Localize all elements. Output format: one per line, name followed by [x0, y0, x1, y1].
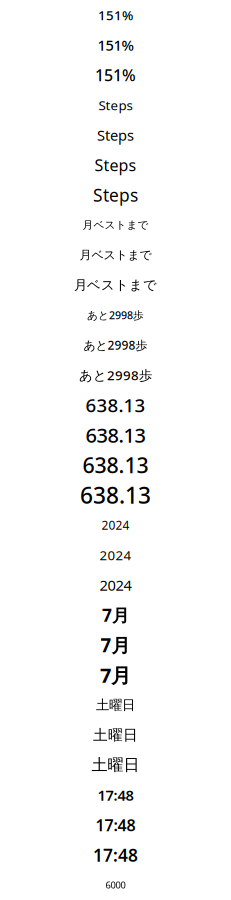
staticText: 7月 — [100, 633, 130, 657]
staticText: 151% — [98, 6, 133, 24]
staticText: あと2998歩 — [83, 337, 147, 353]
staticText: 土曜日 — [91, 755, 139, 775]
staticText: あと2998歩 — [79, 366, 152, 384]
staticText: 2024 — [99, 546, 131, 564]
staticText: あと2998歩 — [87, 308, 144, 322]
staticText: 7月 — [102, 603, 129, 626]
staticText: 月ベストまで — [74, 277, 157, 293]
staticText: 月ベストまで — [82, 218, 148, 231]
staticText: 151% — [97, 35, 133, 55]
staticText: 151% — [95, 64, 136, 86]
staticText: Steps — [98, 96, 132, 114]
staticText: 17:48 — [95, 814, 135, 836]
staticText: 月ベストまで — [79, 248, 151, 262]
staticText: Steps — [94, 154, 136, 176]
staticText: 2024 — [101, 517, 129, 533]
staticText: Steps — [93, 183, 138, 206]
staticText: Steps — [97, 125, 134, 145]
staticText: 638.13 — [85, 393, 145, 417]
staticText: 7月 — [100, 662, 131, 688]
staticText: 土曜日 — [96, 697, 135, 713]
staticText: 638.13 — [80, 480, 151, 510]
staticText: 17:48 — [97, 785, 133, 805]
staticText: 17:48 — [93, 843, 138, 866]
staticText: 638.13 — [85, 422, 145, 448]
staticText: 土曜日 — [93, 726, 138, 744]
staticText: 638.13 — [82, 451, 148, 479]
staticText: 2024 — [99, 575, 131, 595]
